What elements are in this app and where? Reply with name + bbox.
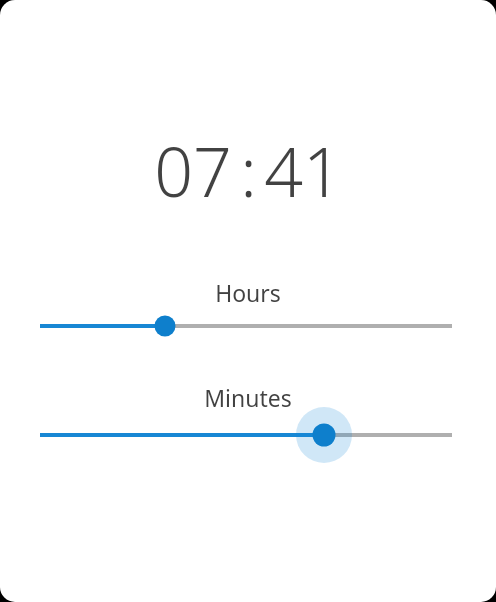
button[interactable]: 07 (140, 124, 244, 216)
staticText: : (240, 124, 257, 210)
staticText: Hours (215, 277, 281, 308)
staticText: Minutes (204, 382, 292, 413)
button[interactable]: 41 (250, 124, 354, 216)
button[interactable]: Minutes slider (0, 401, 496, 469)
staticText: 07 (154, 124, 232, 216)
button[interactable]: Hours slider (0, 292, 496, 360)
staticText: 41 (264, 124, 342, 216)
